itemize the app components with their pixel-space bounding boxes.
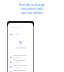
button[interactable] (16, 47, 26, 49)
button[interactable] (8, 54, 33, 59)
staticText: Documents (10, 26, 21, 29)
button[interactable] (8, 59, 33, 64)
staticText: Recently exchange documents with your ta… (19, 3, 45, 15)
button[interactable] (8, 64, 33, 69)
button[interactable] (8, 69, 33, 72)
